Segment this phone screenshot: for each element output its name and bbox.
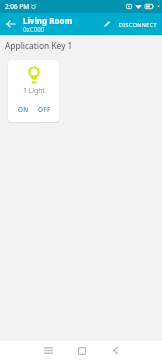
button[interactable]: ON	[17, 103, 30, 116]
staticText: Living Room	[23, 15, 73, 26]
button[interactable]: Home	[70, 342, 93, 359]
button[interactable]: Back	[104, 342, 126, 359]
staticText: 1 Light	[23, 86, 45, 95]
button[interactable]: Edit	[99, 16, 115, 32]
staticText: ON	[18, 105, 29, 114]
staticText: 2:06 PM	[5, 2, 30, 11]
button[interactable]: Recent apps	[37, 342, 59, 359]
button[interactable]: DISCONNECT	[117, 17, 160, 32]
staticText: 0xC000	[23, 25, 45, 33]
button[interactable]: Back	[0, 13, 22, 35]
staticText: DISCONNECT	[119, 21, 158, 28]
staticText: OFF	[38, 105, 51, 114]
button[interactable]: OFF	[37, 103, 52, 116]
button[interactable]: 1 Light	[8, 60, 59, 122]
staticText: Application Key 1	[5, 40, 73, 51]
